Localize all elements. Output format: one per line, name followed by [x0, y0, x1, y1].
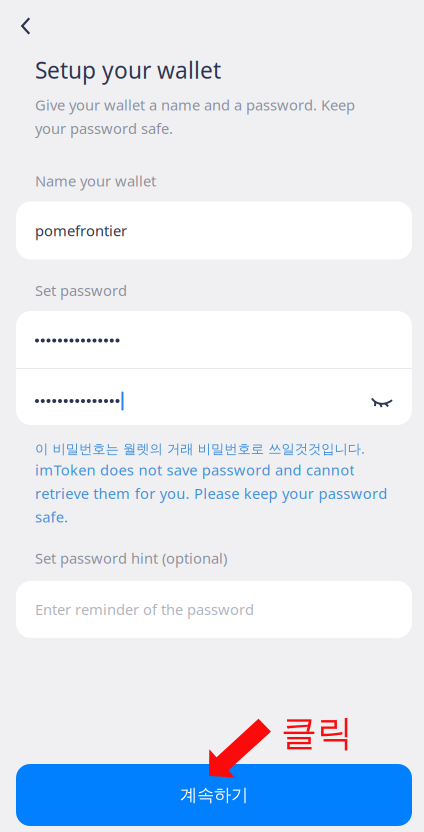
staticText: 클릭	[281, 711, 353, 755]
button[interactable]: Back	[0, 9, 58, 43]
staticText: imToken does not save password and canno…	[35, 460, 387, 526]
button[interactable]: 계속하기	[0, 764, 424, 832]
staticText: Name your wallet	[35, 171, 156, 191]
staticText: pomefrontier	[35, 221, 127, 240]
staticText: Set password	[35, 280, 127, 300]
staticText: Enter reminder of the password	[35, 600, 254, 619]
staticText: Set password hint (optional)	[35, 548, 227, 568]
staticText: 계속하기	[180, 784, 248, 806]
staticText: Setup your wallet	[35, 55, 221, 85]
staticText: Give your wallet a name and a password. …	[35, 95, 355, 138]
staticText: 이 비밀번호는 월렛의 거래 비밀번호로 쓰일것것입니다.	[35, 440, 365, 457]
